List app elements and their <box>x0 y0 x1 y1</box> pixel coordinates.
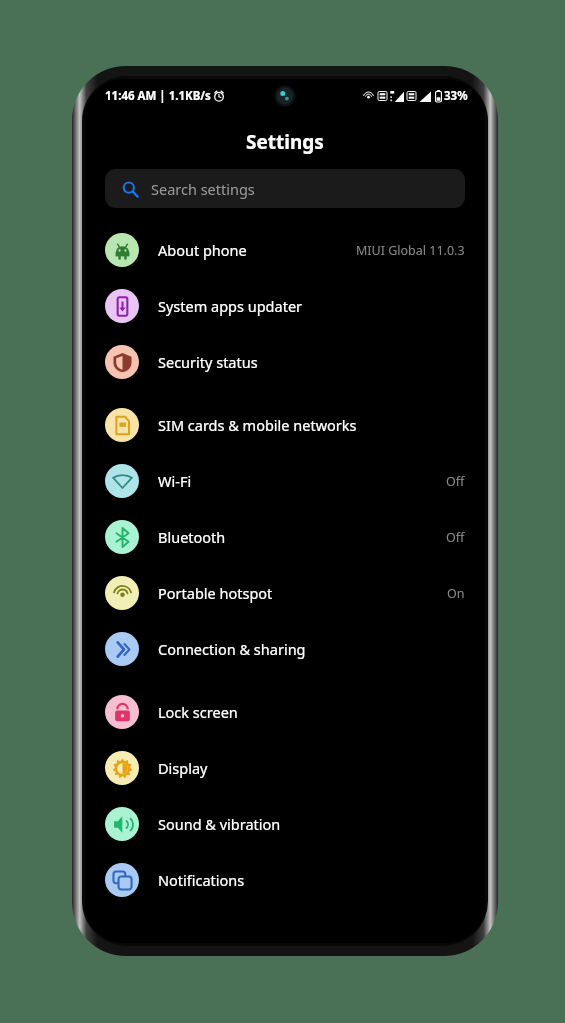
staticText: Display <box>158 758 465 778</box>
button[interactable]: Sound & vibration <box>85 796 485 852</box>
staticText: SIM cards & mobile networks <box>158 415 465 435</box>
staticText: Lock screen <box>158 702 465 722</box>
button[interactable]: Bluetooth <box>85 509 485 565</box>
button[interactable]: About phone <box>85 222 485 278</box>
button[interactable]: Portable hotspot <box>85 565 485 621</box>
staticText: MIUI Global 11.0.3 <box>356 242 465 259</box>
button[interactable]: Wi-Fi <box>85 453 485 509</box>
staticText: Search settings <box>151 179 255 199</box>
button[interactable]: Security status <box>85 334 485 390</box>
staticText: Off <box>446 529 465 546</box>
staticText: Bluetooth <box>158 527 446 547</box>
staticText: Off <box>446 473 465 490</box>
staticText: Wi-Fi <box>158 471 446 491</box>
button[interactable]: System apps updater <box>85 278 485 334</box>
button[interactable]: Search settings <box>105 169 465 208</box>
staticText: Sound & vibration <box>158 814 465 834</box>
staticText: System apps updater <box>158 296 465 316</box>
staticText: 11:46 AM | 1.1KB/s <box>105 88 211 104</box>
staticText: Notifications <box>158 870 465 890</box>
staticText: About phone <box>158 240 356 260</box>
staticText: On <box>447 585 465 602</box>
staticText: Settings <box>246 129 324 155</box>
button[interactable]: Connection & sharing <box>85 621 485 677</box>
staticText: Connection & sharing <box>158 639 465 659</box>
staticText: Security status <box>158 352 465 372</box>
button[interactable]: Display <box>85 740 485 796</box>
button[interactable]: Lock screen <box>85 677 485 740</box>
button[interactable]: SIM cards & mobile networks <box>85 390 485 453</box>
staticText: Portable hotspot <box>158 583 447 603</box>
staticText: 33% <box>444 88 468 104</box>
button[interactable]: Notifications <box>85 852 485 908</box>
